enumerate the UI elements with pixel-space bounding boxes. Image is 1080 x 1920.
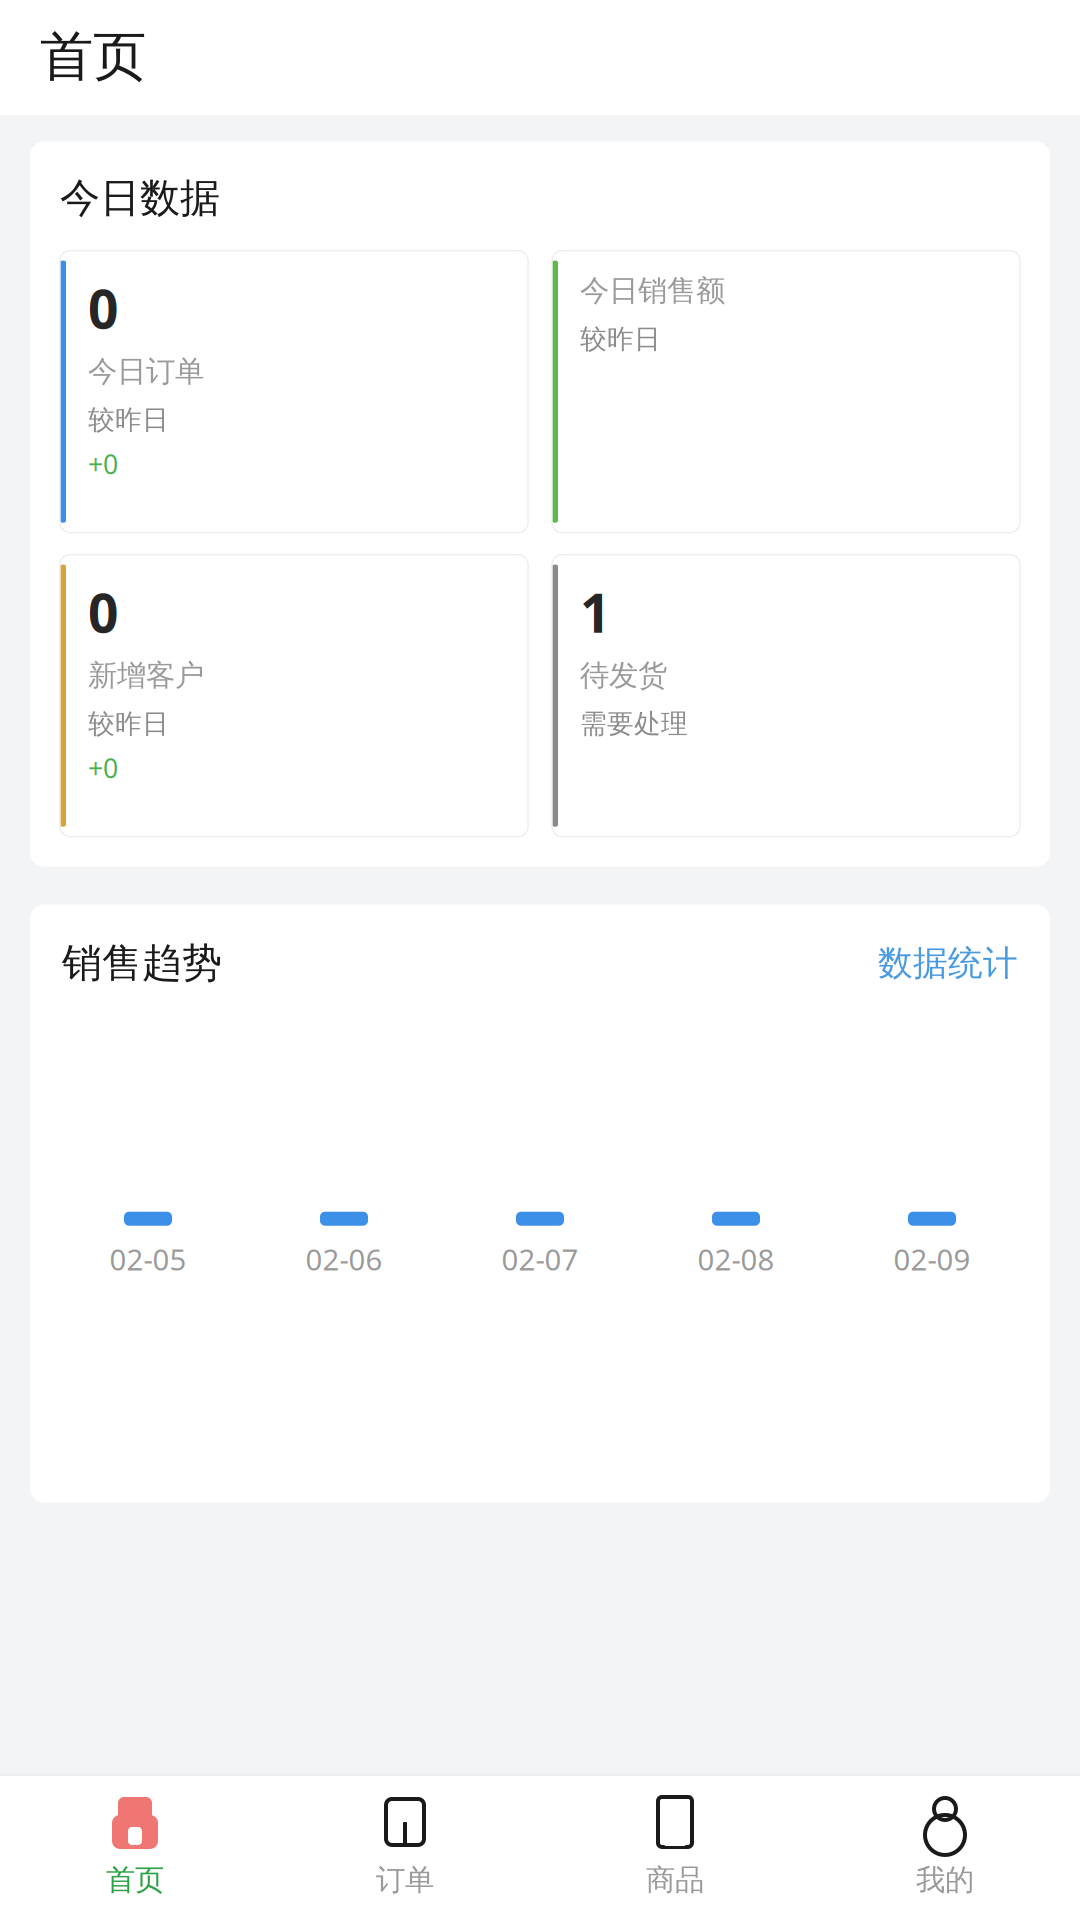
button[interactable]: 今日销售额: [552, 251, 1020, 533]
button[interactable]: 首页: [0, 1776, 270, 1920]
staticText: 订单: [376, 1862, 434, 1898]
button[interactable]: 商品: [540, 1776, 810, 1920]
staticText: 较昨日: [88, 707, 169, 740]
staticText: +0: [88, 750, 118, 786]
staticText: 1: [580, 577, 611, 647]
staticText: 较昨日: [580, 323, 661, 355]
button[interactable]: 我的: [810, 1776, 1080, 1920]
staticText: 02-06: [305, 1240, 382, 1279]
staticText: 02-08: [697, 1240, 774, 1279]
staticText: 02-09: [893, 1240, 970, 1279]
staticText: 待发货: [580, 657, 667, 693]
staticText: 较昨日: [88, 403, 169, 436]
button[interactable]: 0: [60, 555, 528, 837]
staticText: 我的: [916, 1862, 974, 1898]
staticText: +0: [88, 446, 118, 482]
button[interactable]: 订单: [270, 1776, 540, 1920]
staticText: 0: [88, 577, 119, 647]
button[interactable]: 数据统计: [878, 942, 1018, 984]
button[interactable]: 0: [60, 251, 528, 533]
staticText: 今日数据: [60, 173, 220, 223]
staticText: 首页: [106, 1862, 164, 1898]
button[interactable]: 1: [552, 555, 1020, 837]
staticText: 商品: [646, 1862, 704, 1898]
staticText: 需要处理: [580, 707, 688, 740]
staticText: 0: [88, 273, 119, 343]
staticText: 销售趋势: [62, 939, 222, 988]
staticText: 今日销售额: [580, 273, 725, 309]
staticText: 02-05: [109, 1240, 186, 1279]
staticText: 数据统计: [878, 942, 1018, 984]
staticText: 首页: [40, 24, 146, 89]
staticText: 新增客户: [88, 657, 204, 693]
staticText: 02-07: [501, 1240, 578, 1279]
staticText: 今日订单: [88, 353, 204, 389]
